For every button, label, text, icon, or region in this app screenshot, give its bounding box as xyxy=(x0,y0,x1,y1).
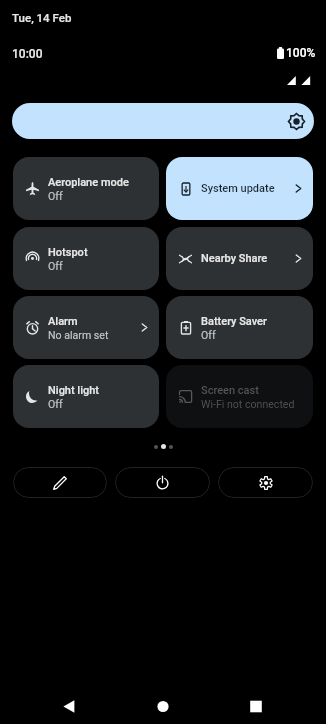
button[interactable]: Home xyxy=(142,682,184,724)
button[interactable]: Screen cast xyxy=(166,365,313,428)
staticText: Tue, 14 Feb xyxy=(12,11,72,24)
staticText: 100% xyxy=(286,46,316,60)
staticText: Nearby Share xyxy=(201,252,268,265)
staticText: Off xyxy=(201,329,216,341)
button[interactable]: Edit xyxy=(13,467,107,498)
staticText: Aeroplane mode xyxy=(48,176,129,189)
button[interactable]: Aeroplane mode xyxy=(13,157,159,220)
staticText: Alarm xyxy=(48,315,78,328)
button[interactable]: Brightness xyxy=(12,103,314,139)
button[interactable]: Nearby Share xyxy=(166,227,313,290)
staticText: Night light xyxy=(48,384,100,397)
staticText: Off xyxy=(48,398,63,410)
button[interactable]: Night light xyxy=(13,365,159,428)
staticText: No alarm set xyxy=(48,329,109,341)
button[interactable]: Settings xyxy=(218,467,313,498)
button[interactable]: Hotspot xyxy=(13,227,159,290)
button[interactable]: Power xyxy=(115,467,210,498)
staticText: Off xyxy=(48,190,63,202)
staticText: Battery Saver xyxy=(201,315,267,328)
button[interactable]: Alarm xyxy=(13,296,159,359)
button[interactable]: System update xyxy=(166,157,313,220)
button[interactable]: Battery Saver xyxy=(166,296,313,359)
staticText: 10:00 xyxy=(12,47,43,61)
staticText: Wi-Fi not connected xyxy=(201,398,295,410)
staticText: System update xyxy=(201,182,275,195)
staticText: Screen cast xyxy=(201,384,259,397)
staticText: Off xyxy=(48,260,63,272)
button[interactable]: Back xyxy=(48,682,90,724)
button[interactable]: Recent apps xyxy=(235,682,277,724)
staticText: Hotspot xyxy=(48,246,88,259)
